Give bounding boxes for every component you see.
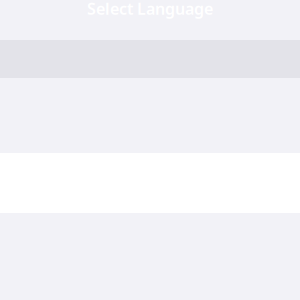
staticText: Select Language: [87, 0, 213, 19]
